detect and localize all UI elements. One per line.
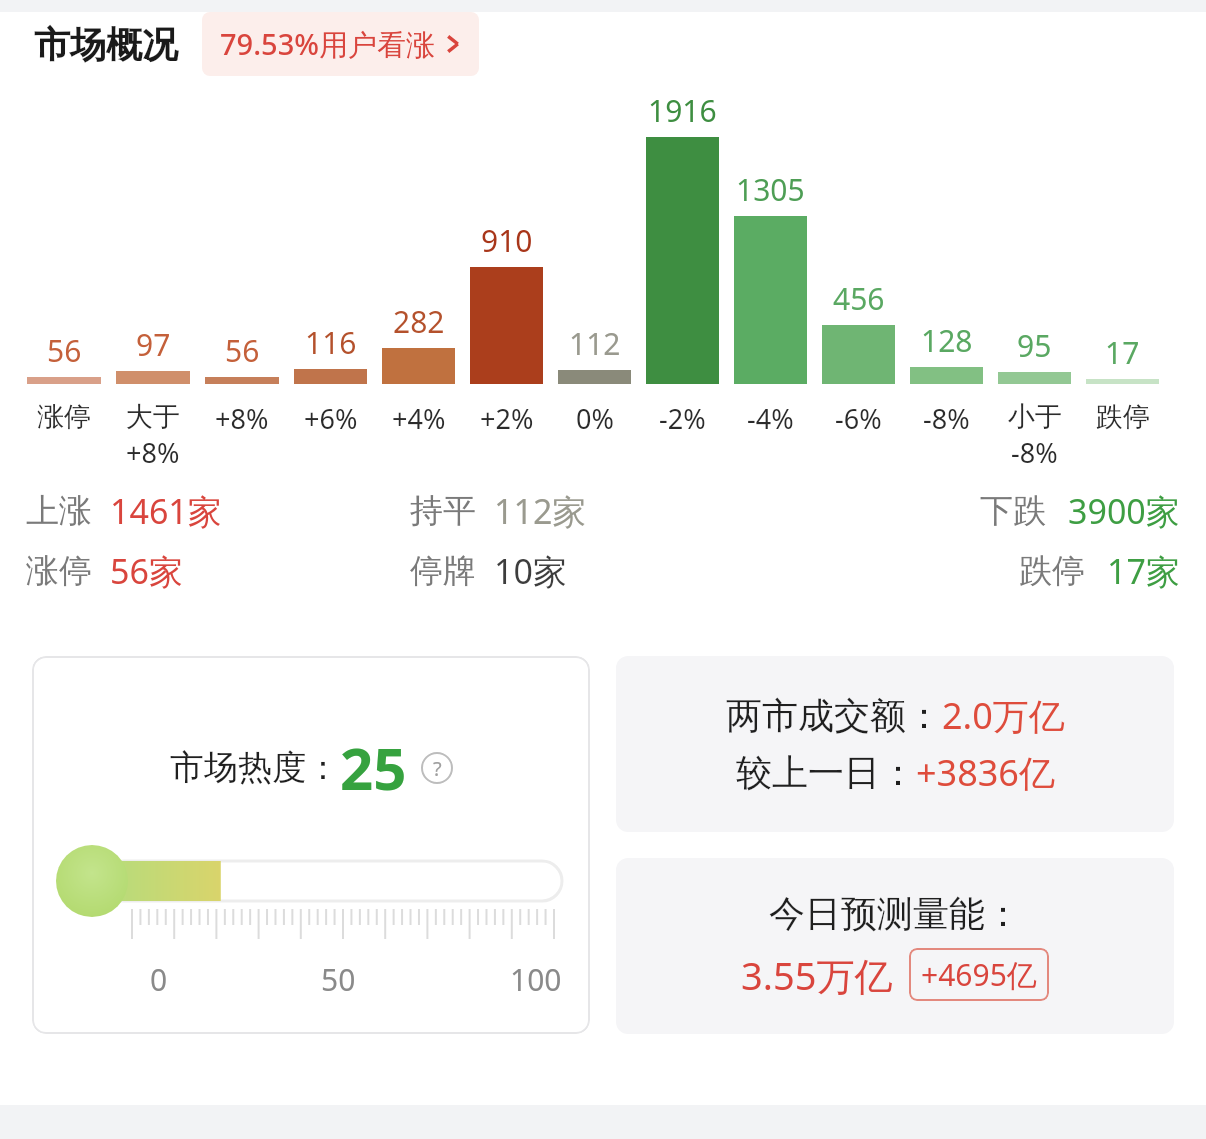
staticText: 79.53%用户看涨 xyxy=(220,24,435,64)
staticText: 持平 xyxy=(410,490,476,532)
staticText: 停牌 xyxy=(410,550,476,592)
staticText: -4% xyxy=(747,400,794,437)
staticText: 跌停 xyxy=(1019,550,1085,592)
staticText: 97 xyxy=(136,324,171,365)
staticText: +8% xyxy=(215,400,269,437)
staticText: +3836亿 xyxy=(916,748,1055,797)
staticText: 100 xyxy=(510,959,562,1000)
staticText: ? xyxy=(433,755,442,782)
staticText: 17 xyxy=(1105,332,1140,373)
staticText: 1916 xyxy=(648,90,717,131)
staticText: 10家 xyxy=(494,548,567,594)
staticText: 128 xyxy=(921,320,973,361)
staticText: 56家 xyxy=(110,548,183,594)
staticText: -2% xyxy=(659,400,706,437)
staticText: 跌停 xyxy=(1096,400,1150,434)
staticText: 下跌 xyxy=(980,490,1046,532)
staticText: 2.0万亿 xyxy=(942,691,1065,740)
staticText: 25 xyxy=(340,728,407,807)
staticText: +4% xyxy=(392,400,446,437)
staticText: +4695亿 xyxy=(921,954,1037,995)
staticText: 今日预测量能： xyxy=(769,891,1021,936)
staticText: 市场概况 xyxy=(34,22,178,67)
staticText: 56 xyxy=(47,330,82,371)
button[interactable]: 市场热度： xyxy=(32,656,590,1034)
staticText: 涨停 xyxy=(26,550,92,592)
staticText: 1305 xyxy=(736,169,805,210)
staticText: 112家 xyxy=(494,488,587,534)
staticText: 1461家 xyxy=(110,488,222,534)
staticText: -8% xyxy=(1011,434,1058,468)
staticText: 282 xyxy=(393,301,445,342)
staticText: 小于 xyxy=(1008,400,1062,434)
staticText: 910 xyxy=(481,220,533,261)
staticText: 3.55万亿 xyxy=(741,949,893,1001)
staticText: 0% xyxy=(576,400,614,437)
staticText: 112 xyxy=(569,323,621,364)
staticText: 两市成交额： xyxy=(726,693,942,738)
staticText: 3900家 xyxy=(1068,488,1180,534)
staticText: +2% xyxy=(480,400,534,437)
button[interactable]: 两市成交额： xyxy=(616,656,1174,832)
staticText: 涨停 xyxy=(37,400,91,434)
staticText: -6% xyxy=(835,400,882,437)
staticText: 95 xyxy=(1017,325,1052,366)
button[interactable]: 79.53%用户看涨 xyxy=(202,12,479,76)
staticText: 大于 xyxy=(126,400,180,434)
button[interactable]: 今日预测量能： xyxy=(616,858,1174,1034)
staticText: 116 xyxy=(305,322,357,363)
staticText: 较上一日： xyxy=(736,750,916,795)
staticText: +8% xyxy=(126,434,180,468)
button[interactable]: 帮助 xyxy=(421,752,453,784)
staticText: 上涨 xyxy=(26,490,92,532)
staticText: 市场热度： xyxy=(170,746,340,789)
staticText: 56 xyxy=(225,330,260,371)
staticText: 17家 xyxy=(1107,548,1180,594)
staticText: -8% xyxy=(923,400,970,437)
staticText: 0 xyxy=(150,959,168,1000)
staticText: +6% xyxy=(304,400,358,437)
staticText: 50 xyxy=(321,959,356,1000)
staticText: 456 xyxy=(833,278,885,319)
